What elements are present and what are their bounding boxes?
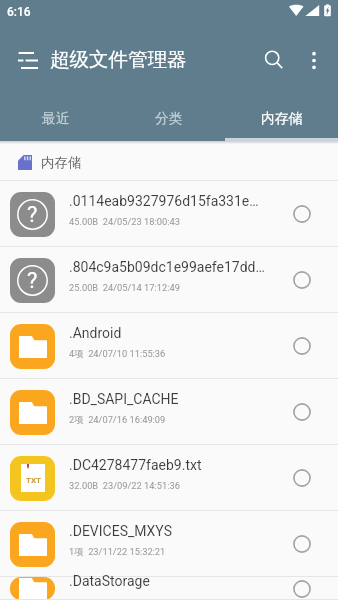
button[interactable]: Select bbox=[284, 328, 320, 364]
staticText: 45.00B 24/05/23 18:00:43 bbox=[69, 216, 180, 227]
button[interactable]: Select bbox=[284, 526, 320, 562]
staticText: .DataStorage bbox=[69, 573, 150, 589]
button[interactable]: Select bbox=[284, 577, 320, 600]
staticText: 分类 bbox=[155, 110, 183, 127]
button[interactable]: 内存储 bbox=[18, 154, 82, 171]
staticText: .Android bbox=[69, 325, 122, 341]
button[interactable]: .DEVICES_MXYS bbox=[0, 511, 338, 577]
staticText: .DC4278477faeb9.txt bbox=[69, 457, 202, 473]
button[interactable]: Select bbox=[284, 460, 320, 496]
staticText: 4项 24/07/10 11:55:36 bbox=[69, 348, 166, 360]
staticText: 32.00B 23/09/22 14:51:36 bbox=[69, 480, 180, 491]
button[interactable]: ? bbox=[0, 247, 338, 313]
button[interactable]: 内存储 bbox=[225, 95, 338, 141]
staticText: .0114eab9327976d15fa331e… bbox=[69, 193, 259, 209]
staticText: 1项 23/11/22 15:32:21 bbox=[69, 546, 166, 558]
staticText: 6:16 bbox=[7, 5, 31, 19]
staticText: .804c9a5b09dc1e99aefe17dd… bbox=[69, 259, 265, 275]
staticText: .DEVICES_MXYS bbox=[69, 523, 172, 539]
button[interactable]: Menu bbox=[8, 40, 48, 80]
button[interactable]: .BD_SAPI_CACHE bbox=[0, 379, 338, 445]
staticText: .BD_SAPI_CACHE bbox=[69, 391, 179, 407]
button[interactable]: TXT bbox=[0, 445, 338, 511]
button[interactable]: 最近 bbox=[0, 95, 112, 141]
staticText: ? bbox=[27, 202, 38, 228]
staticText: 内存储 bbox=[261, 110, 303, 127]
staticText: 2项 24/07/16 16:49:09 bbox=[69, 414, 166, 426]
button[interactable]: Select bbox=[284, 196, 320, 232]
button[interactable]: ? bbox=[0, 181, 338, 247]
staticText: TXT bbox=[26, 476, 41, 485]
button[interactable]: .Android bbox=[0, 313, 338, 379]
staticText: 25.00B 24/05/14 17:12:49 bbox=[69, 282, 180, 293]
button[interactable]: 分类 bbox=[112, 95, 225, 141]
staticText: 超级文件管理器 bbox=[50, 47, 187, 72]
staticText: 最近 bbox=[42, 110, 70, 127]
button[interactable]: Select bbox=[284, 394, 320, 430]
button[interactable]: .DataStorage bbox=[0, 577, 338, 600]
button[interactable]: More options bbox=[295, 41, 333, 79]
staticText: 内存储 bbox=[41, 154, 82, 171]
button[interactable]: Select bbox=[284, 262, 320, 298]
button[interactable]: Search bbox=[253, 39, 295, 81]
staticText: ? bbox=[27, 268, 38, 294]
